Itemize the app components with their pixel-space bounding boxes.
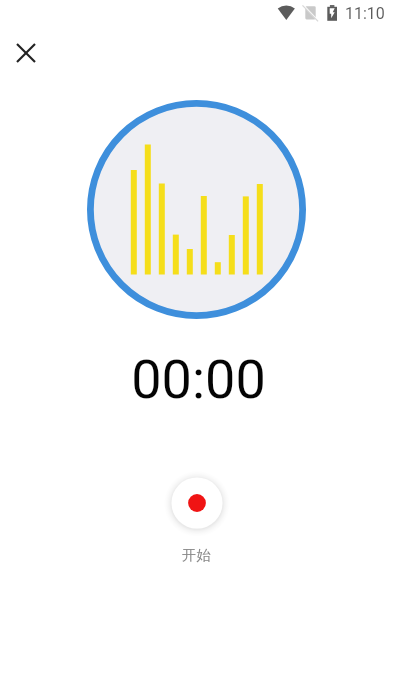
button[interactable]: Start recording	[160, 466, 234, 540]
staticText: 00:00	[131, 348, 266, 411]
button[interactable]: Close	[8, 35, 44, 71]
staticText: 11:10	[345, 4, 385, 23]
staticText: 开始	[182, 546, 211, 564]
